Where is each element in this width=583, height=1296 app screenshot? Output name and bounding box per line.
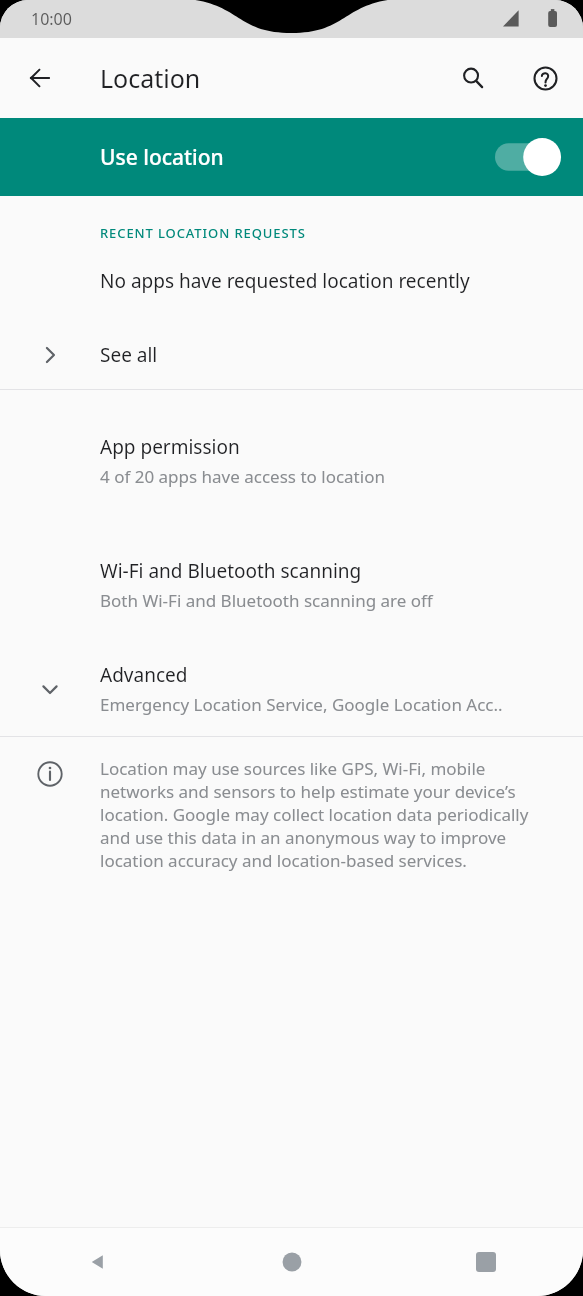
button[interactable]: Home (195, 1228, 389, 1296)
staticText: RECENT LOCATION REQUESTS (100, 224, 306, 242)
button[interactable]: No apps have requested location recently (0, 268, 583, 294)
staticText: Both Wi-Fi and Bluetooth scanning are of… (100, 589, 433, 612)
staticText: Use location (100, 143, 224, 172)
button[interactable]: Recent apps (389, 1228, 583, 1296)
staticText: App permission (100, 434, 240, 460)
button[interactable]: App permission (0, 390, 583, 518)
button[interactable]: Back (0, 1228, 195, 1296)
staticText: Wi-Fi and Bluetooth scanning (100, 558, 362, 584)
button[interactable]: Advanced (0, 646, 583, 736)
staticText: Location may use sources like GPS, Wi-Fi… (100, 757, 555, 872)
button[interactable]: Help (521, 54, 569, 102)
button[interactable]: Back (16, 54, 64, 102)
staticText: 4 of 20 apps have access to location (100, 465, 385, 488)
staticText: Advanced (100, 662, 188, 688)
staticText: See all (100, 342, 158, 368)
button[interactable]: See all (0, 326, 583, 384)
button[interactable]: Wi-Fi and Bluetooth scanning (0, 518, 583, 646)
staticText: 10:00 (31, 8, 72, 30)
staticText: Location (100, 61, 201, 95)
staticText: Emergency Location Service, Google Locat… (100, 693, 503, 716)
button[interactable]: Search (449, 54, 497, 102)
button[interactable]: Use location (0, 118, 583, 196)
staticText: No apps have requested location recently (100, 268, 470, 294)
